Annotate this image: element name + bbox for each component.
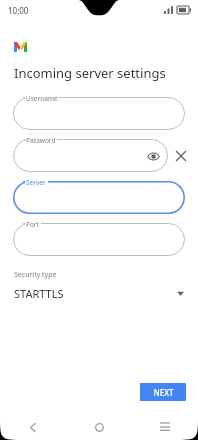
staticText: 10:00: [8, 5, 29, 16]
staticText: Security type: [14, 270, 57, 280]
button[interactable]: Port: [13, 223, 185, 256]
staticText: STARTTLS: [14, 286, 177, 301]
staticText: NEXT: [153, 387, 174, 398]
button[interactable]: Password: [13, 139, 168, 172]
button[interactable]: Server: [13, 181, 185, 214]
button[interactable]: Clear password: [172, 147, 190, 165]
button[interactable]: Username: [13, 97, 185, 130]
staticText: Password: [26, 136, 56, 145]
staticText: Server: [26, 178, 46, 187]
staticText: Username: [26, 94, 58, 103]
button[interactable]: Security type: [0, 270, 198, 301]
button[interactable]: Back: [18, 414, 48, 440]
staticText: Incoming server settings: [14, 64, 166, 82]
button[interactable]: Recent apps: [150, 414, 180, 440]
button[interactable]: Home: [84, 414, 114, 440]
staticText: Port: [26, 220, 39, 229]
button[interactable]: NEXT: [140, 383, 186, 401]
button[interactable]: Show password: [146, 149, 160, 163]
